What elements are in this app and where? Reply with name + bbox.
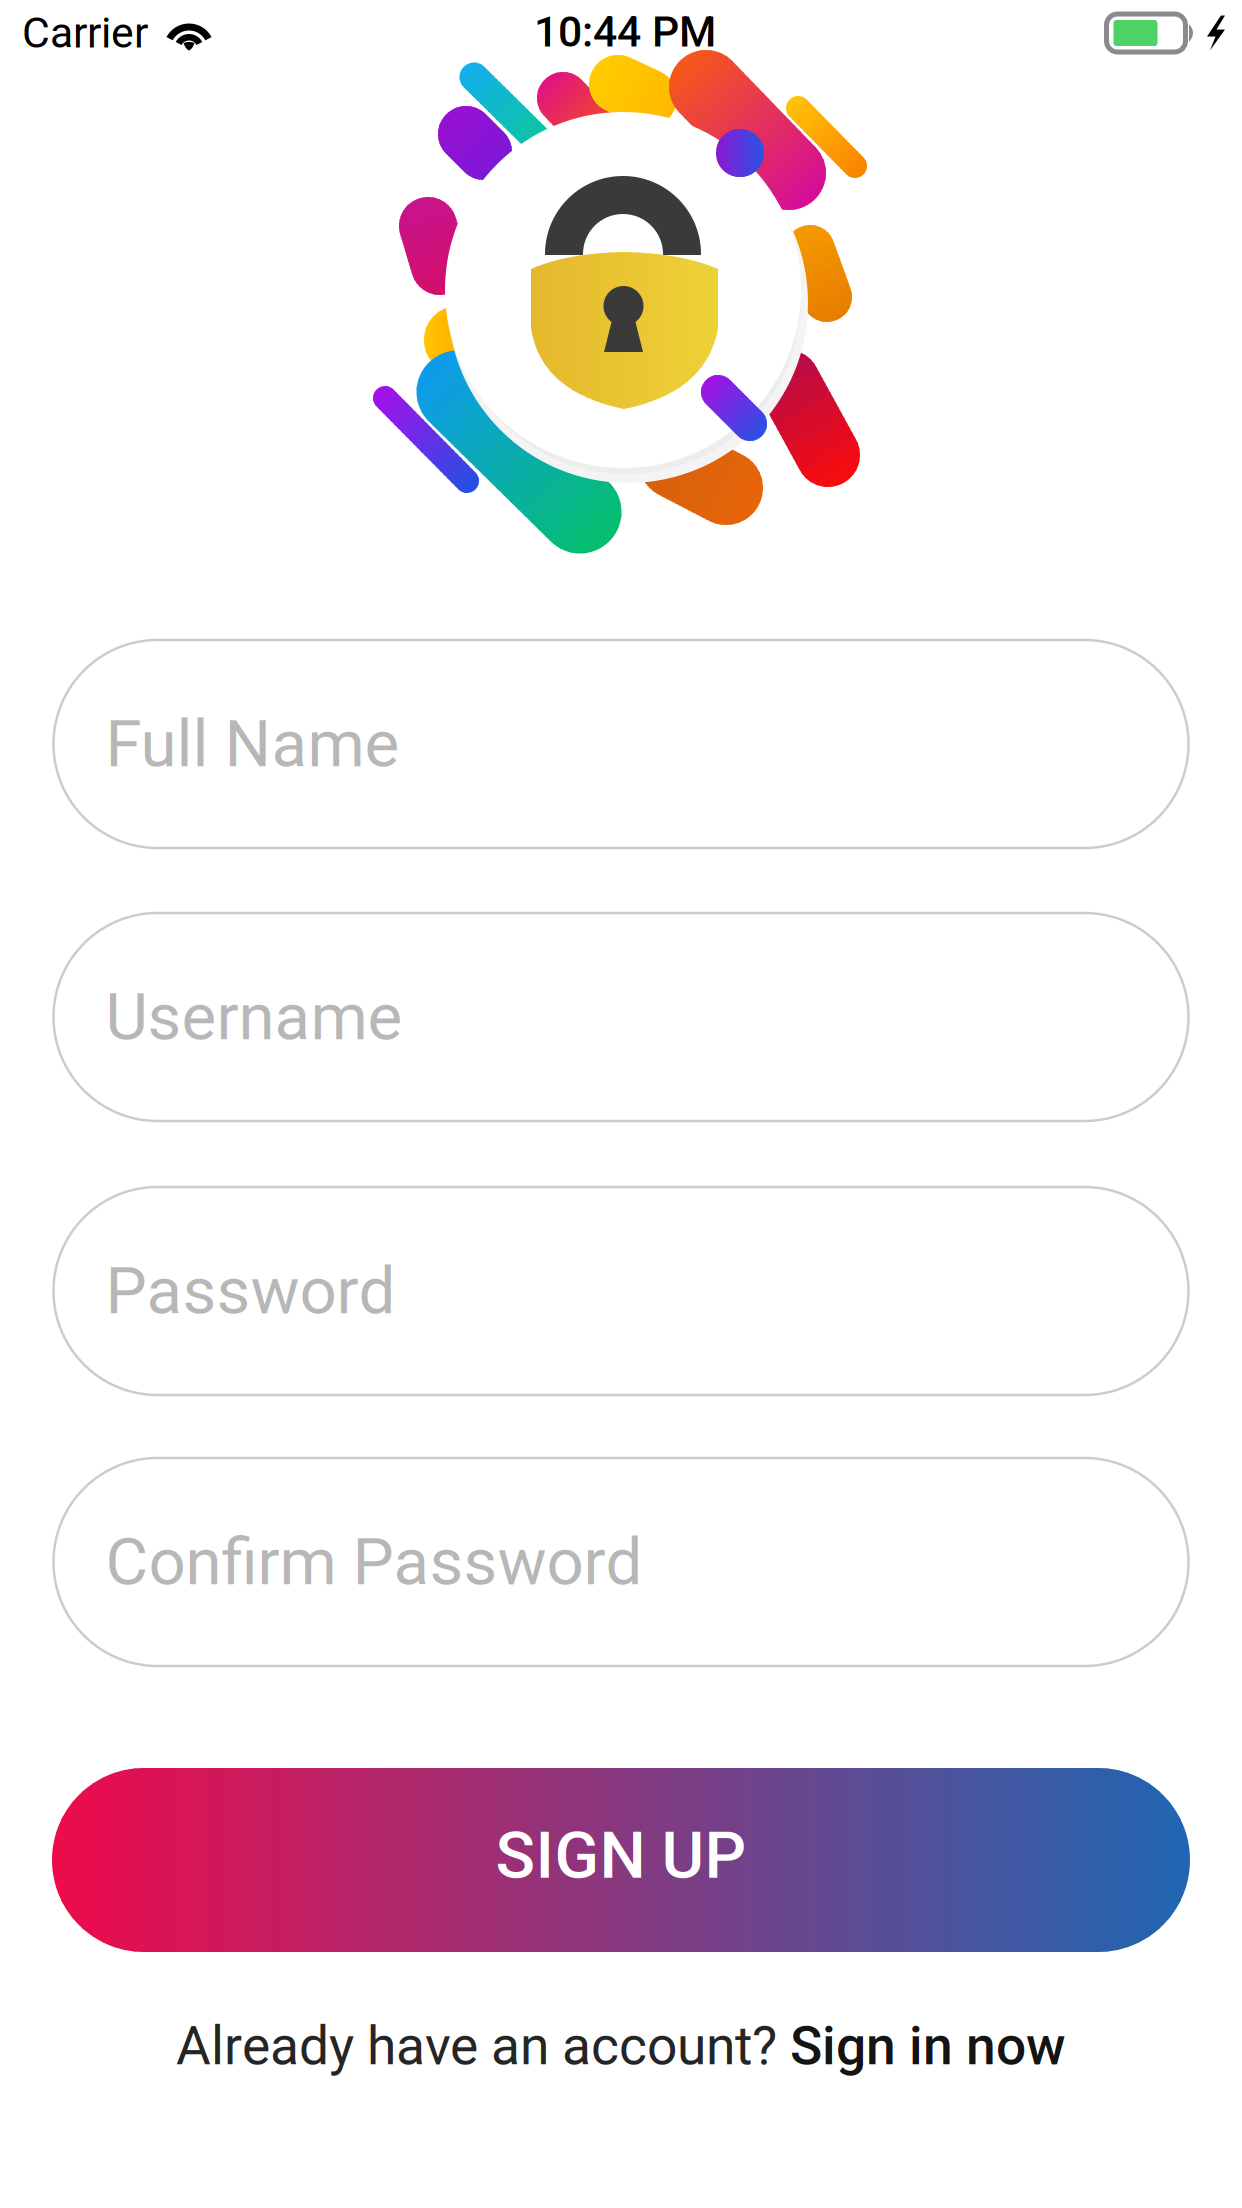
staticText: SIGN UP [495, 1817, 746, 1894]
staticText: 10:44 PM [534, 7, 716, 57]
staticText: Sign in now [790, 2015, 1066, 2077]
staticText: Password [105, 1253, 395, 1329]
staticText: Already have an account? [176, 2015, 790, 2077]
staticText: Confirm Password [105, 1524, 642, 1600]
button[interactable]: Password [53, 1187, 1188, 1395]
button[interactable]: SIGN UP [52, 1768, 1190, 1952]
staticText: Username [105, 979, 402, 1055]
button[interactable]: Confirm Password [53, 1458, 1188, 1666]
staticText: Carrier [22, 8, 148, 58]
button[interactable]: Full Name [53, 640, 1188, 848]
button[interactable]: Username [53, 913, 1188, 1121]
button[interactable]: Already have an account? [176, 2009, 1066, 2083]
staticText: Full Name [105, 706, 399, 782]
